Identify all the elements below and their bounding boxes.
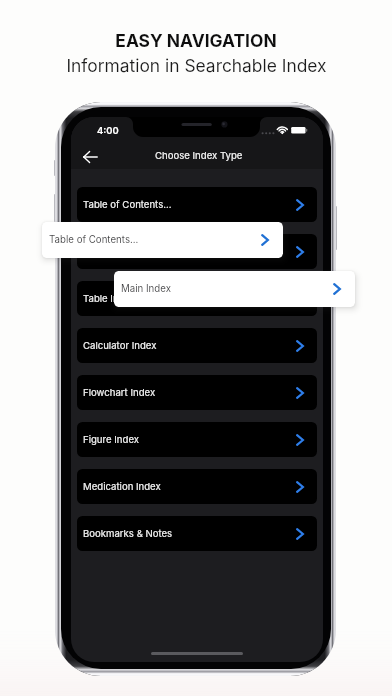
staticText: Medication Index xyxy=(83,481,161,493)
button[interactable]: Table Index xyxy=(77,281,317,316)
staticText: Table of Contents... xyxy=(49,234,139,246)
staticText: Information in Searchable Index xyxy=(66,55,327,76)
button[interactable]: Figure Index xyxy=(77,422,317,457)
staticText: Calculator Index xyxy=(83,340,157,352)
button[interactable]: Table of Contents... xyxy=(77,187,317,222)
staticText: Bookmarks & Notes xyxy=(83,528,173,540)
button[interactable]: Main Index xyxy=(114,271,355,307)
button[interactable]: Main Index xyxy=(77,234,317,269)
staticText: Flowchart Index xyxy=(83,387,156,399)
staticText: Figure Index xyxy=(83,434,140,446)
staticText: Choose Index Type xyxy=(155,150,243,162)
staticText: EASY NAVIGATION xyxy=(115,30,277,51)
button[interactable]: Bookmarks & Notes xyxy=(77,516,317,551)
button[interactable]: Flowchart Index xyxy=(77,375,317,410)
staticText: Table Index xyxy=(83,293,136,305)
staticText: Table of Contents... xyxy=(83,199,172,211)
button[interactable]: Medication Index xyxy=(77,469,317,504)
staticText: Main Index xyxy=(121,283,171,295)
button[interactable]: Back xyxy=(79,145,102,169)
button[interactable]: Calculator Index xyxy=(77,328,317,363)
staticText: 4:00 xyxy=(97,125,119,136)
button[interactable]: Table of Contents... xyxy=(42,222,283,258)
